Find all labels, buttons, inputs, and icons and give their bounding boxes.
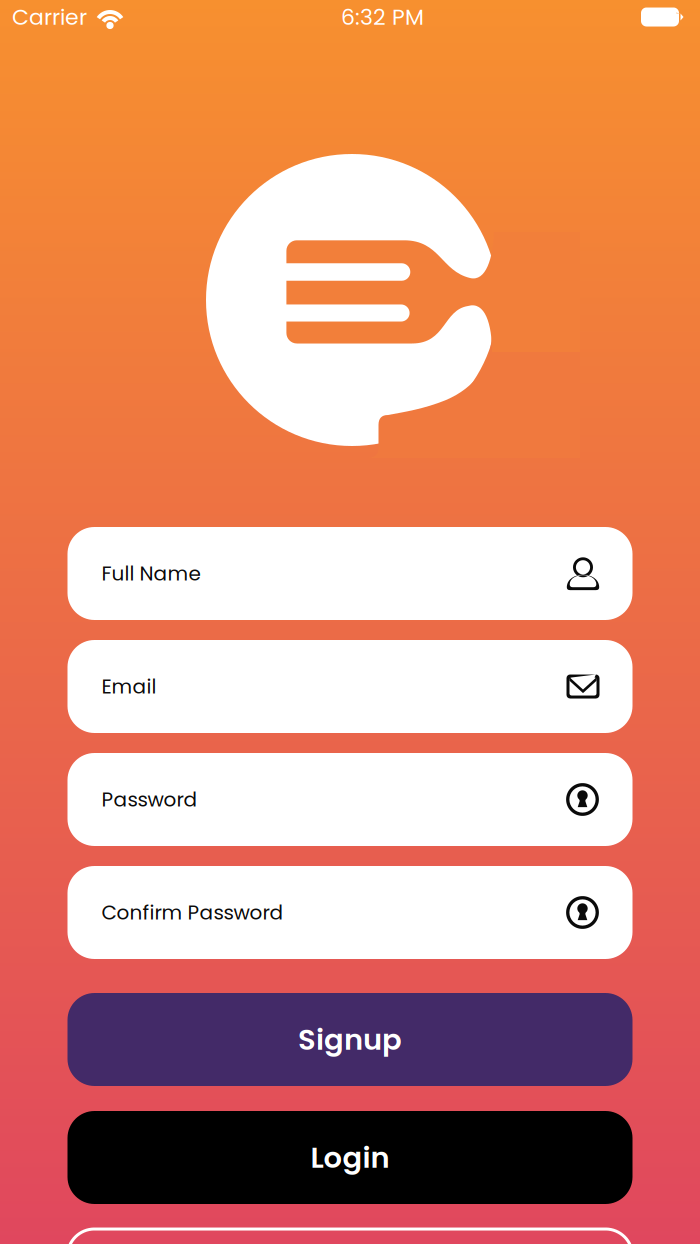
staticText: Login — [310, 1137, 389, 1178]
button[interactable]: Confirm Password — [67, 866, 632, 959]
button[interactable]: Email — [67, 640, 632, 733]
button[interactable]: Login — [67, 1111, 632, 1204]
button[interactable]: Guest — [67, 1229, 632, 1244]
staticText: 6:32 PM — [341, 2, 424, 32]
button[interactable]: Full Name — [67, 527, 632, 620]
staticText: Signup — [298, 1019, 402, 1060]
staticText: Carrier — [12, 2, 87, 32]
staticText: Confirm Password — [101, 898, 283, 926]
button[interactable]: Signup — [67, 993, 632, 1086]
staticText: Full Name — [101, 559, 200, 587]
staticText: Email — [101, 672, 156, 700]
staticText: Password — [101, 785, 197, 813]
button[interactable]: Password — [67, 753, 632, 846]
